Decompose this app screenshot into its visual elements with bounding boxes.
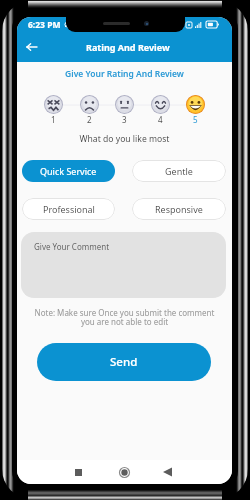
button[interactable]: Send xyxy=(37,343,211,381)
staticText: Rating And Review xyxy=(86,41,170,53)
staticText: 2 xyxy=(87,114,92,125)
staticText: Note: Make sure Once you submit the comm… xyxy=(27,307,222,328)
staticText: Professional xyxy=(43,203,95,215)
staticText: 4 xyxy=(158,114,163,125)
staticText: 5 xyxy=(193,114,198,125)
staticText: Responsive xyxy=(155,203,203,215)
button[interactable]: Responsive xyxy=(132,198,226,220)
button[interactable]: Recents xyxy=(69,463,87,481)
staticText: Send xyxy=(110,354,138,370)
staticText: 3 xyxy=(122,114,127,125)
staticText: 6:23 PM xyxy=(28,19,61,31)
button[interactable]: Home xyxy=(115,463,133,481)
button[interactable]: Give Your Comment xyxy=(21,232,226,298)
button[interactable]: Back xyxy=(20,36,42,58)
staticText: Gentle xyxy=(165,165,193,177)
button[interactable]: Quick Service xyxy=(22,160,115,182)
staticText: Quick Service xyxy=(40,165,97,177)
button[interactable]: Professional xyxy=(22,198,115,220)
staticText: Give Your Rating And Review xyxy=(17,68,232,80)
staticText: Give Your Comment xyxy=(34,241,110,252)
button[interactable]: Back xyxy=(158,463,176,481)
staticText: What do you like most xyxy=(17,133,232,145)
button[interactable]: Gentle xyxy=(132,160,226,182)
staticText: 1 xyxy=(51,114,56,125)
